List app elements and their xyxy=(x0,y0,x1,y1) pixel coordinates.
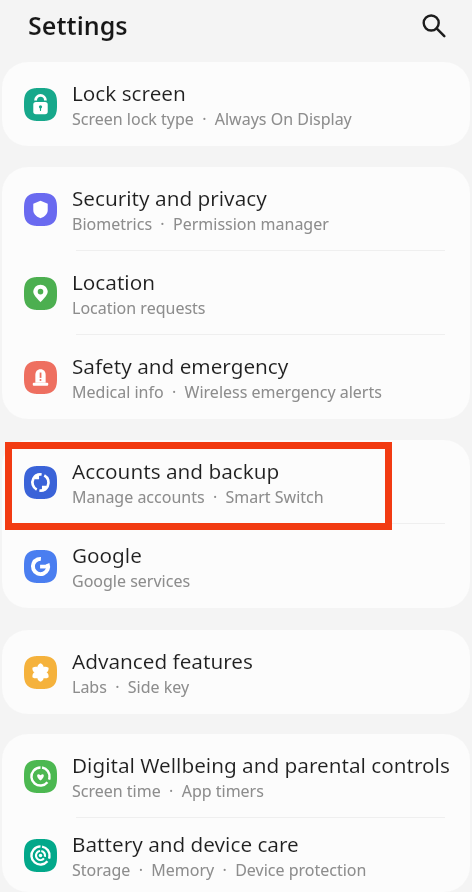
button[interactable]: Google xyxy=(2,524,470,608)
staticText: Digital Wellbeing and parental controls xyxy=(72,751,450,779)
staticText: Accounts and backup xyxy=(72,457,280,485)
button[interactable]: Advanced features xyxy=(2,630,470,714)
button[interactable]: Digital Wellbeing and parental controls xyxy=(2,734,470,818)
staticText: Google xyxy=(72,541,142,569)
staticText: Manage accounts · Smart Switch xyxy=(72,486,324,508)
button[interactable]: Security and privacy xyxy=(2,167,470,251)
staticText: Screen time · App timers xyxy=(72,780,264,802)
staticText: Storage · Memory · Device protection xyxy=(72,859,367,881)
staticText: Safety and emergency xyxy=(72,352,289,380)
staticText: Labs · Side key xyxy=(72,676,190,698)
staticText: Biometrics · Permission manager xyxy=(72,213,329,235)
button[interactable]: Accounts and backup xyxy=(2,440,470,524)
button[interactable]: Lock screen xyxy=(2,62,470,146)
button[interactable]: Safety and emergency xyxy=(2,335,470,419)
button[interactable]: Search xyxy=(415,7,453,45)
button[interactable]: Location xyxy=(2,251,470,335)
staticText: Location requests xyxy=(72,297,206,319)
staticText: Screen lock type · Always On Display xyxy=(72,108,352,130)
staticText: Battery and device care xyxy=(72,830,299,858)
staticText: Medical info · Wireless emergency alerts xyxy=(72,381,382,403)
staticText: Lock screen xyxy=(72,79,186,107)
staticText: Security and privacy xyxy=(72,184,267,212)
staticText: Location xyxy=(72,268,155,296)
staticText: Advanced features xyxy=(72,647,253,675)
staticText: Settings xyxy=(28,8,128,42)
staticText: Google services xyxy=(72,570,191,592)
button[interactable]: Battery and device care xyxy=(2,818,470,892)
